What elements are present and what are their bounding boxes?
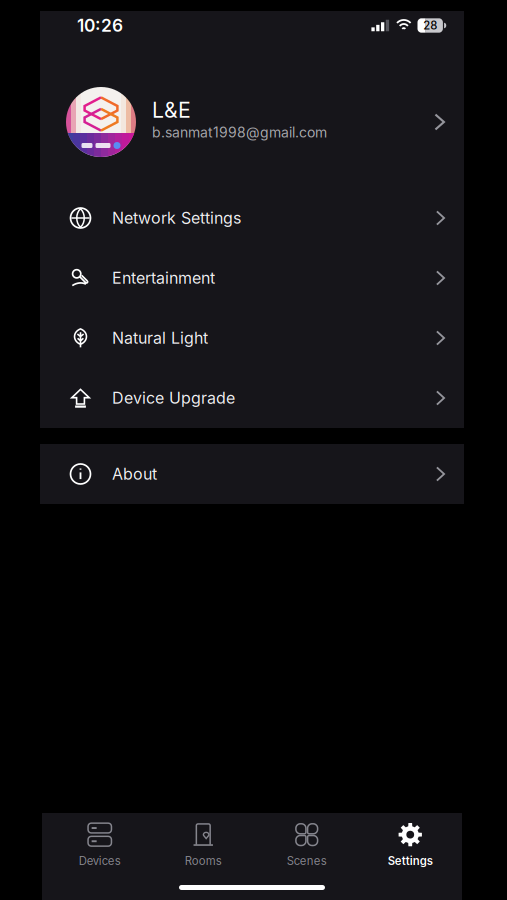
staticText: b.sanmat1998@gmail.com [152, 124, 327, 141]
staticText: Natural Light [112, 328, 208, 348]
button[interactable]: Network Settings [40, 188, 464, 248]
staticText: About [112, 464, 157, 484]
staticText: 28 [423, 19, 437, 32]
button[interactable]: Rooms [151, 823, 255, 867]
staticText: Rooms [185, 854, 222, 868]
staticText: Network Settings [112, 208, 241, 228]
button[interactable]: Devices [48, 823, 151, 867]
staticText: Entertainment [112, 268, 215, 288]
button[interactable]: Natural Light [40, 308, 464, 368]
button[interactable]: Scenes [255, 823, 358, 867]
staticText: Devices [79, 854, 121, 868]
button[interactable]: L&E [40, 40, 464, 188]
button[interactable]: Settings [358, 823, 462, 867]
button[interactable]: Entertainment [40, 248, 464, 308]
staticText: L&E [152, 97, 191, 123]
button[interactable]: Device Upgrade [40, 368, 464, 428]
staticText: Device Upgrade [112, 388, 235, 408]
button[interactable]: About [40, 444, 464, 504]
staticText: 10:26 [77, 15, 123, 36]
staticText: Settings [388, 854, 433, 868]
staticText: Scenes [287, 854, 327, 868]
